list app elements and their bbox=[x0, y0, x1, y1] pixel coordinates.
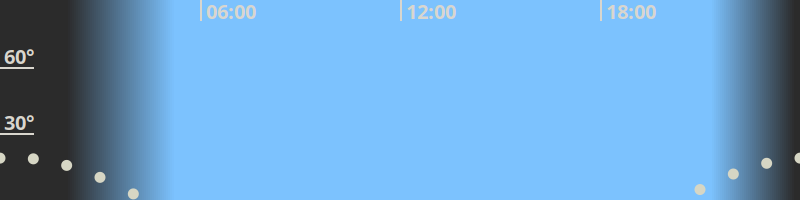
staticText: 12:00 bbox=[406, 0, 456, 25]
staticText: 06:00 bbox=[206, 0, 256, 25]
staticText: 30° bbox=[4, 109, 34, 136]
staticText: 18:00 bbox=[606, 0, 656, 25]
staticText: 60° bbox=[4, 43, 34, 70]
